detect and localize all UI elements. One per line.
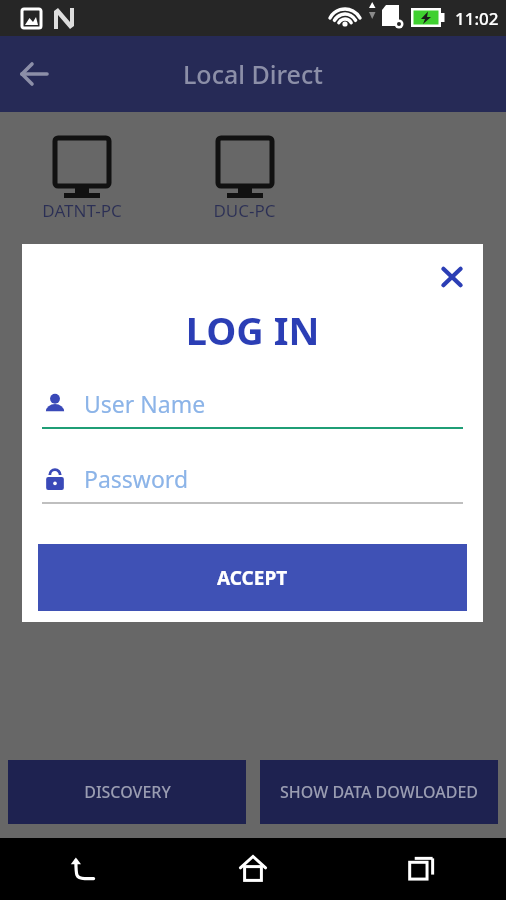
staticText: LOG IN: [22, 304, 483, 356]
button[interactable]: Close: [429, 254, 475, 300]
button[interactable]: DATNT-PC: [0, 138, 163, 222]
button[interactable]: Home: [168, 838, 337, 900]
button[interactable]: Recents: [337, 838, 506, 900]
button[interactable]: SHOW DATA DOWLOADED: [260, 760, 498, 824]
staticText: SHOW DATA DOWLOADED: [280, 781, 478, 803]
staticText: Local Direct: [183, 57, 323, 91]
button[interactable]: Back: [0, 838, 168, 900]
button[interactable]: DUC-PC: [163, 138, 326, 222]
button[interactable]: ACCEPT: [38, 544, 467, 611]
staticText: Password: [84, 463, 189, 494]
staticText: ACCEPT: [217, 565, 288, 591]
staticText: 11:02: [455, 7, 499, 30]
staticText: User Name: [84, 388, 206, 419]
staticText: DISCOVERY: [84, 781, 171, 803]
staticText: DUC-PC: [213, 199, 276, 222]
staticText: DATNT-PC: [42, 199, 122, 222]
button[interactable]: Back: [8, 50, 56, 98]
button[interactable]: DISCOVERY: [8, 760, 246, 824]
